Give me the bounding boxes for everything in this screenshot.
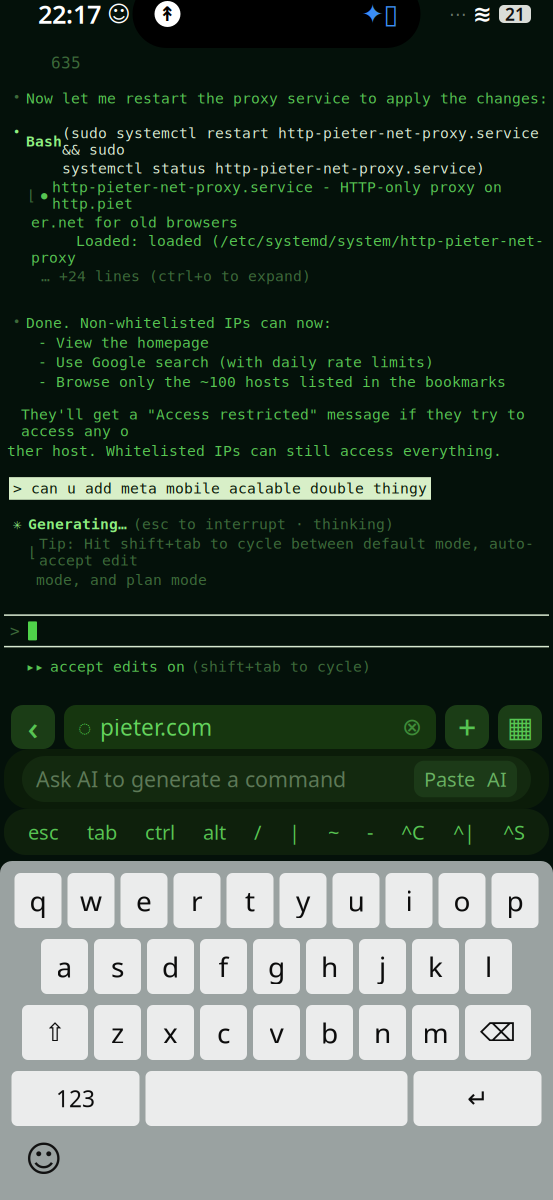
button[interactable]: w [67, 873, 114, 928]
button[interactable]: tab [87, 819, 117, 845]
button[interactable]: o [438, 873, 485, 928]
staticText: ⏺ [13, 90, 20, 102]
staticText: Generating… [28, 516, 127, 532]
button[interactable]: ⇧ [22, 1005, 88, 1060]
staticText: ⏺ [13, 125, 20, 136]
staticText: ~ [328, 819, 339, 845]
staticText: (esc to interrupt · thinking) [133, 516, 394, 532]
staticText: 22:17 [38, 0, 101, 31]
staticText: z [111, 1014, 124, 1051]
button[interactable]: a [41, 939, 88, 994]
button[interactable]: v [253, 1005, 300, 1060]
button[interactable]: b [306, 1005, 353, 1060]
button[interactable]: h [306, 939, 353, 994]
button[interactable]: esc [28, 819, 59, 845]
staticText: 635 [51, 54, 81, 72]
staticText: g [268, 948, 285, 985]
button[interactable]: g [253, 939, 300, 994]
staticText: ^C [401, 819, 425, 845]
button[interactable]: u [332, 873, 379, 928]
staticText: ⌊ [27, 187, 36, 204]
staticText: - [367, 819, 373, 845]
staticText: ▸▸ [26, 658, 44, 675]
staticText: ^S [503, 819, 525, 845]
staticText: accept edits on [50, 658, 185, 675]
staticText: q [29, 882, 46, 919]
button[interactable]: n [359, 1005, 406, 1060]
staticText: AI [487, 766, 507, 792]
staticText: ⊗ [402, 713, 422, 741]
button[interactable]: s [94, 939, 141, 994]
staticText: ▦ [507, 711, 533, 743]
button[interactable]: ↵ [413, 1071, 541, 1126]
button[interactable]: | [289, 819, 300, 845]
button[interactable]: ^C [401, 819, 425, 845]
button[interactable]: New Tab [445, 705, 489, 749]
button[interactable]: l [465, 939, 512, 994]
staticText: ctrl [145, 819, 175, 845]
staticText: 21 [505, 2, 525, 25]
button[interactable]: p [491, 873, 538, 928]
button[interactable]: y [279, 873, 326, 928]
staticText: Paste [424, 766, 475, 792]
staticText: Done. Non-whitelisted IPs can now: [26, 315, 332, 331]
button[interactable]: e [120, 873, 167, 928]
staticText: ther host. Whitelisted IPs can still acc… [7, 442, 502, 459]
button[interactable]: ^S [503, 819, 525, 845]
staticText: s [111, 948, 124, 985]
staticText: j [379, 948, 386, 985]
button[interactable]: z [94, 1005, 141, 1060]
button[interactable]: j [359, 939, 406, 994]
staticText: - View the homepage [38, 334, 209, 351]
button[interactable]: k [412, 939, 459, 994]
button[interactable]: c [200, 1005, 247, 1060]
button[interactable]: Ask AI to generate a command [0, 749, 553, 809]
staticText: ⋯ [449, 4, 466, 24]
button[interactable]: - [367, 819, 373, 845]
button[interactable]: d [147, 939, 194, 994]
staticText: o [453, 882, 470, 919]
button[interactable]: Back [11, 705, 55, 749]
button[interactable]: Tabs [498, 705, 542, 749]
button[interactable]: f [200, 939, 247, 994]
staticText: c [217, 1014, 230, 1051]
button[interactable]: alt [203, 819, 226, 845]
staticText: ^| [453, 819, 475, 845]
staticText: Bash [26, 133, 62, 150]
button[interactable]: / [254, 819, 261, 845]
staticText: d [162, 948, 179, 985]
staticText: n [374, 1014, 391, 1051]
staticText: u [347, 882, 364, 919]
button[interactable]: m [412, 1005, 459, 1060]
button[interactable]: ⌫ [465, 1005, 531, 1060]
staticText: ✦▯ [361, 0, 398, 29]
button[interactable]: i [385, 873, 432, 928]
staticText: alt [203, 819, 226, 845]
staticText: / [254, 819, 261, 845]
staticText: tab [87, 819, 117, 845]
staticText: er.net for old browsers [31, 214, 238, 231]
staticText: Tip: Hit shift+tab to cycle between defa… [39, 535, 534, 569]
button[interactable]: q [14, 873, 61, 928]
staticText: x [163, 1014, 178, 1051]
button[interactable]: x [147, 1005, 194, 1060]
button[interactable]: 123 [11, 1071, 139, 1126]
button[interactable]: t [226, 873, 273, 928]
staticText: ↵ [467, 1084, 488, 1113]
button[interactable]: r [173, 873, 220, 928]
staticText: ☺ [25, 1139, 63, 1179]
button[interactable]: ◌ [64, 705, 436, 749]
button[interactable] [145, 1071, 407, 1126]
button[interactable]: ^| [453, 819, 475, 845]
staticText: v [269, 1014, 283, 1051]
staticText: > can u add meta mobile acalable double … [13, 480, 427, 497]
staticText: - Browse only the ~100 hosts listed in t… [38, 373, 506, 390]
button[interactable]: ctrl [145, 819, 175, 845]
staticText: r [191, 882, 203, 919]
staticText: (shift+tab to cycle) [191, 658, 371, 675]
button[interactable]: Emoji [22, 1137, 66, 1181]
staticText: ‹ [27, 705, 38, 749]
button[interactable]: ~ [328, 819, 339, 845]
staticText: ☺ [107, 1, 131, 27]
